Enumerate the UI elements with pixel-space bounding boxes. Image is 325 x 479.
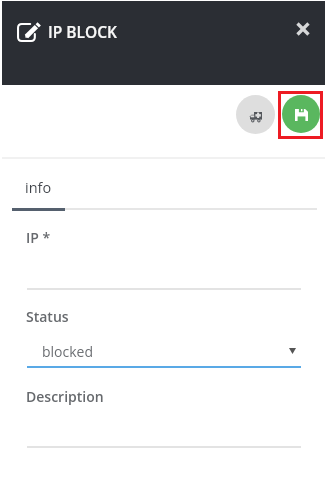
button[interactable]: Ambulance: [236, 95, 275, 134]
staticText: blocked: [42, 342, 94, 361]
button[interactable]: Close: [293, 19, 313, 39]
staticText: IP BLOCK: [48, 21, 117, 42]
button[interactable]: info: [12, 174, 66, 210]
staticText: IP *: [26, 228, 51, 247]
staticText: Status: [26, 307, 69, 326]
staticText: Description: [26, 387, 104, 406]
staticText: info: [25, 178, 52, 198]
other: Edit: [17, 23, 39, 42]
button[interactable]: Save: [282, 95, 320, 133]
